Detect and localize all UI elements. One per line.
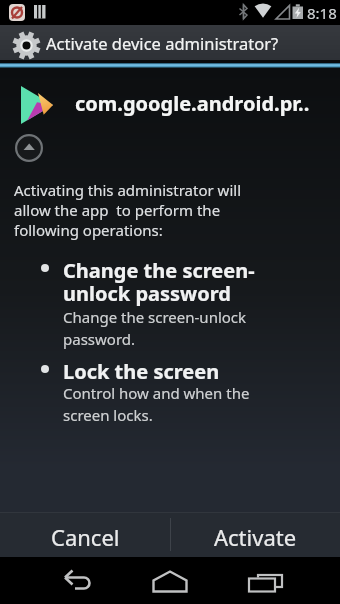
button[interactable] [234,557,286,599]
button[interactable] [50,557,94,599]
button[interactable] [15,134,43,162]
button[interactable] [148,557,192,599]
button[interactable]: Cancel [0,512,170,557]
staticText: Control how and when the screen locks. [63,383,250,426]
staticText: Activate [214,522,297,552]
staticText: Lock the screen [63,358,220,385]
staticText: Change the screen-unlock password. [63,307,247,350]
staticText: Change the screen- unlock password [63,257,255,307]
staticText: Cancel [51,522,120,552]
staticText: Activate device administrator? [46,32,279,54]
staticText: 8:18 [307,3,337,23]
button[interactable]: Activate [170,512,340,557]
staticText: com.google.android.pr.. [75,90,310,117]
staticText: Activating this administrator will allow… [14,180,241,240]
